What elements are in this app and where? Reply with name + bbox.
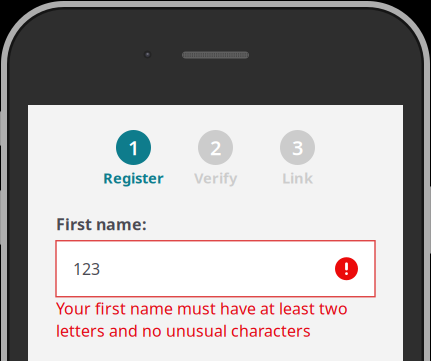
button[interactable]: 1 (92, 130, 174, 187)
staticText: 123 (73, 258, 100, 279)
button[interactable]: 3 (256, 130, 338, 187)
staticText: Link (282, 168, 313, 187)
staticText: First name: (56, 213, 146, 235)
button[interactable]: 2 (174, 130, 256, 187)
staticText: 1 (128, 134, 139, 161)
staticText: Verify (194, 168, 237, 187)
staticText: Register (103, 168, 164, 187)
staticText: 2 (210, 134, 221, 161)
staticText: 3 (292, 134, 303, 161)
staticText: letters and no unusual characters (56, 320, 311, 341)
staticText: Your first name must have at least two (56, 298, 348, 319)
